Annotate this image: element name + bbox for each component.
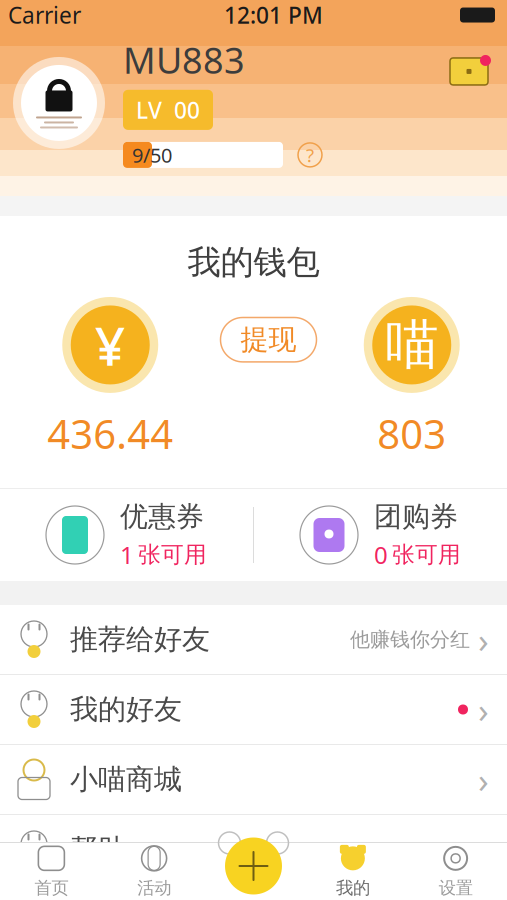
staticText: 我的钱包 xyxy=(187,242,319,283)
staticText: 推荐给好友 xyxy=(70,622,210,657)
staticText: 0 xyxy=(374,539,388,571)
staticText: ¥ xyxy=(95,309,126,380)
staticText: › xyxy=(478,686,489,732)
staticText: 00 xyxy=(174,95,200,125)
button[interactable]: 喵 xyxy=(364,297,460,460)
staticText: 436.44 xyxy=(47,407,173,460)
staticText: 小喵商城 xyxy=(70,762,182,797)
staticText: MU883 xyxy=(123,36,245,84)
staticText: 活动 xyxy=(137,877,171,899)
button[interactable]: 活动 xyxy=(103,844,206,899)
button[interactable]: 我的好友 xyxy=(0,675,507,745)
button[interactable]: 我的 xyxy=(301,844,404,899)
button[interactable]: 团购券 xyxy=(254,489,507,581)
button[interactable]: 首页 xyxy=(0,844,103,899)
staticText: 提现 xyxy=(240,322,296,357)
button[interactable]: 帮助 xyxy=(0,815,507,885)
staticText: 我的好友 xyxy=(70,692,182,727)
button[interactable]: Add xyxy=(205,827,301,900)
staticText: 他赚钱你分红 xyxy=(350,627,470,652)
staticText: ? xyxy=(306,142,314,167)
button[interactable]: 推荐给好友 xyxy=(0,605,507,675)
staticText: 喵 xyxy=(385,312,438,378)
staticText: 张可用 xyxy=(138,541,207,569)
button[interactable]: ¥ xyxy=(47,297,173,460)
staticText: 设置 xyxy=(439,877,473,899)
button[interactable]: 小喵商城 xyxy=(0,745,507,815)
button[interactable]: 优惠券 xyxy=(0,489,253,581)
staticText: 803 xyxy=(377,407,446,460)
staticText: 帮助 xyxy=(70,832,126,867)
staticText: 团购券 xyxy=(374,499,458,534)
staticText: 优惠券 xyxy=(120,499,204,534)
staticText: LV xyxy=(136,95,162,125)
button[interactable]: 提现 xyxy=(220,317,316,362)
staticText: 我的 xyxy=(336,877,370,899)
staticText: 12:01 PM xyxy=(224,0,323,30)
button[interactable]: Avatar xyxy=(0,57,105,149)
button[interactable]: 设置 xyxy=(404,844,507,899)
staticText: › xyxy=(478,826,489,872)
staticText: 首页 xyxy=(34,877,68,899)
staticText: › xyxy=(478,616,489,662)
staticText: 张可用 xyxy=(392,541,461,569)
staticText: 9/50 xyxy=(132,142,172,168)
staticText: 1 xyxy=(120,539,134,571)
button[interactable]: Level help xyxy=(295,140,325,170)
staticText: › xyxy=(478,756,489,802)
button[interactable]: Messages xyxy=(447,55,507,151)
staticText: Carrier xyxy=(8,0,81,30)
